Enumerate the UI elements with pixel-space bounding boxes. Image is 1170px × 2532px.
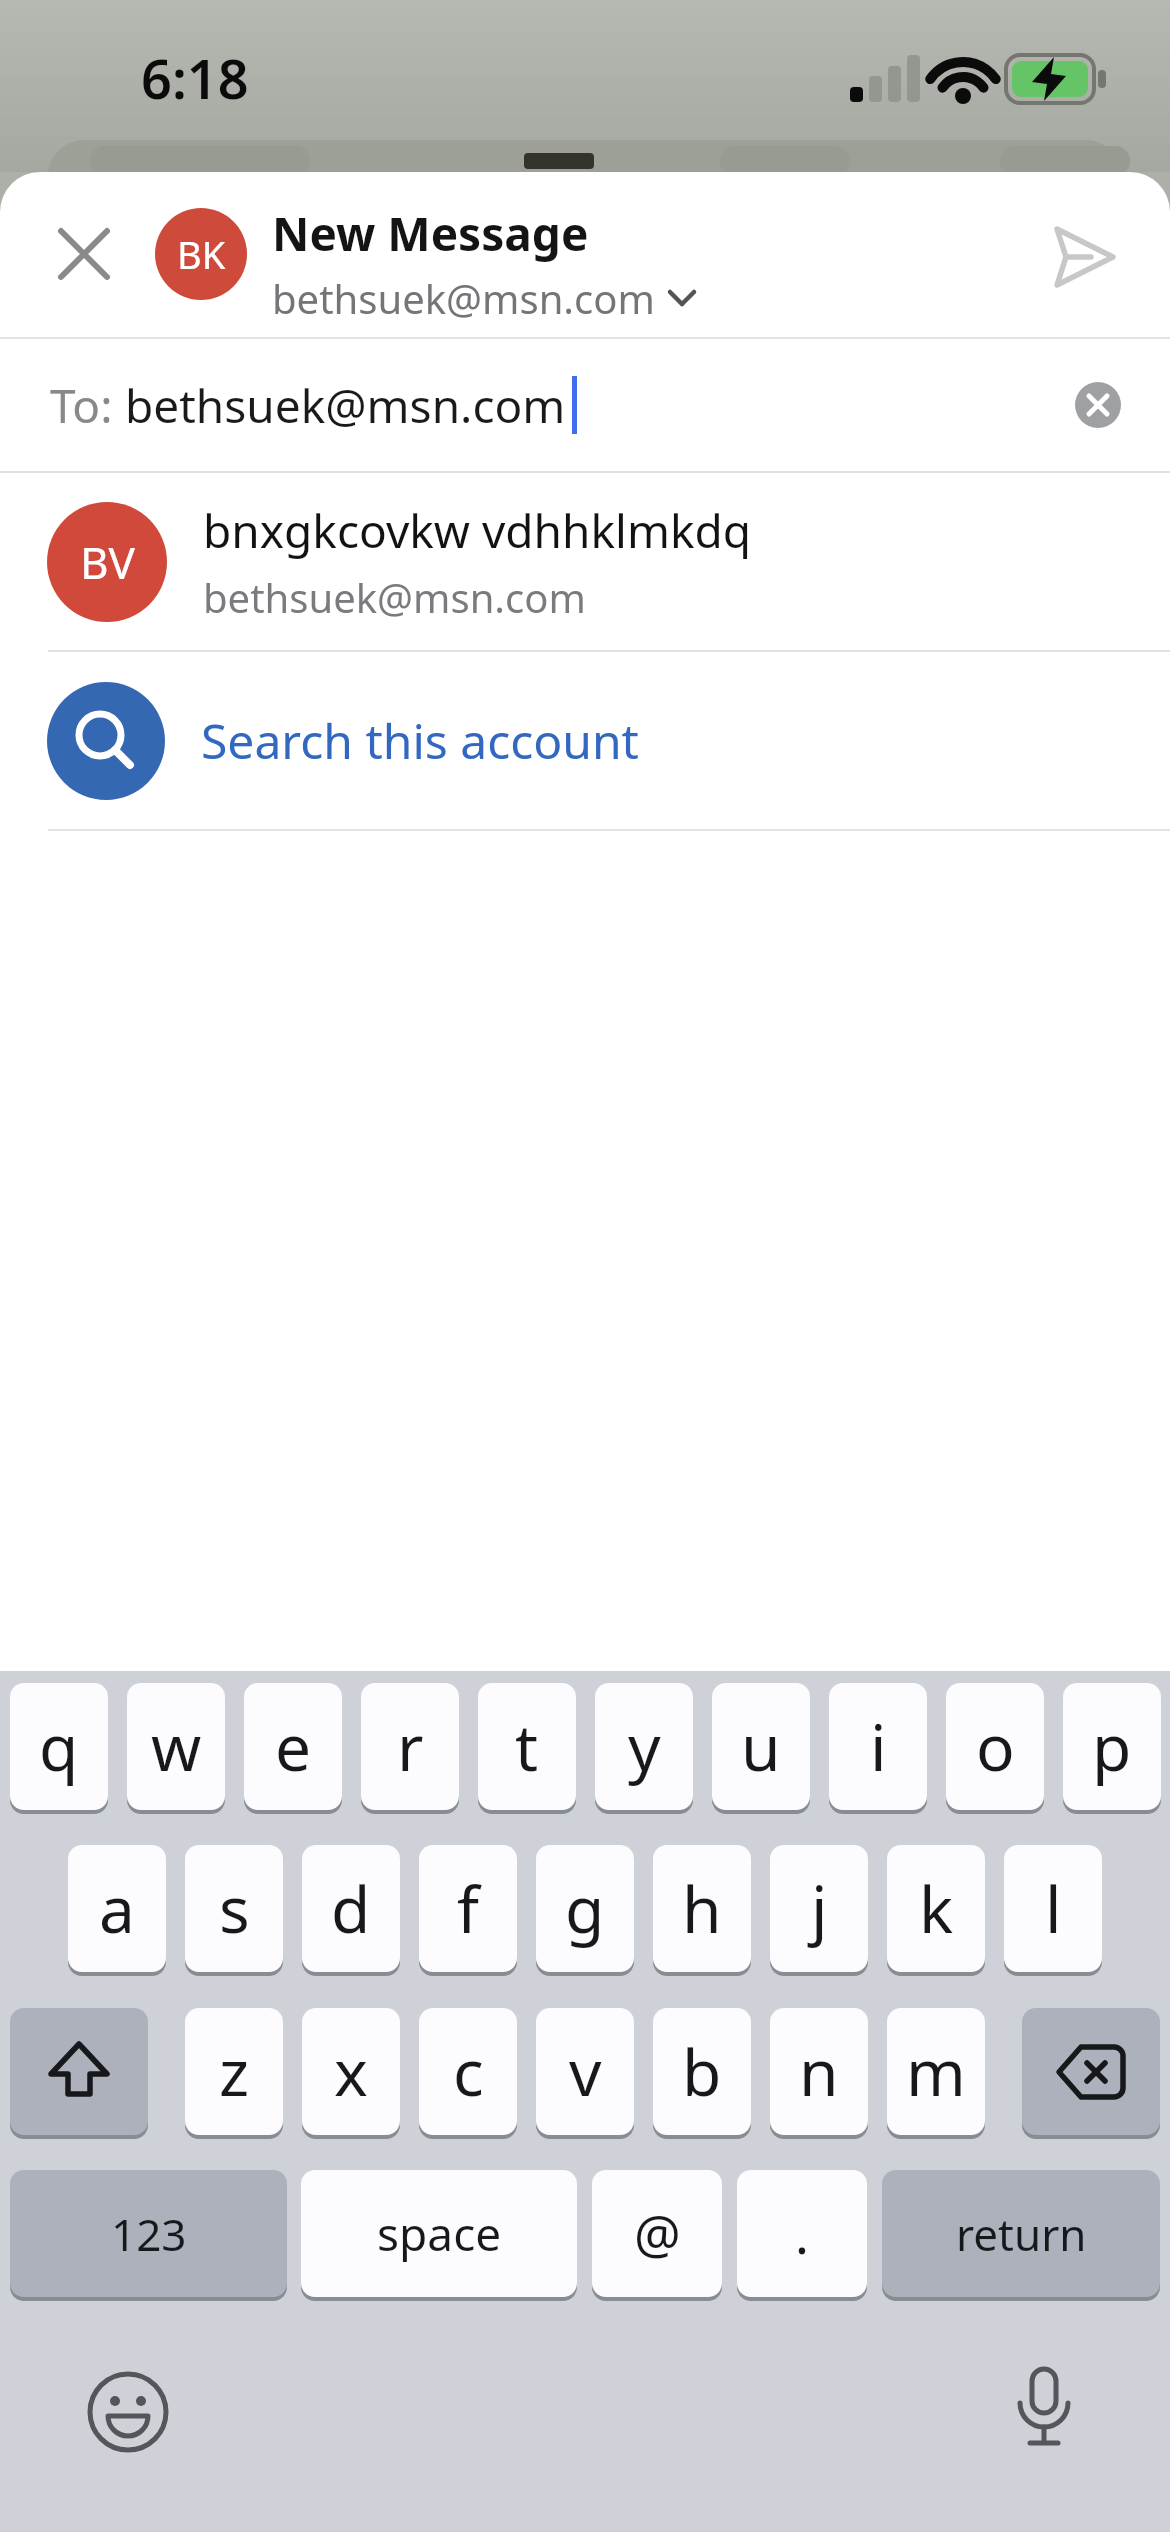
button[interactable]: BV: [0, 473, 1170, 650]
button[interactable]: [994, 2360, 1094, 2460]
button[interactable]: j: [770, 1845, 868, 1972]
staticText: To:: [50, 374, 125, 437]
button[interactable]: [10, 2008, 148, 2135]
staticText: c: [453, 2028, 484, 2115]
staticText: y: [628, 1703, 661, 1790]
staticText: New Message: [272, 202, 589, 265]
button[interactable]: [1022, 2008, 1160, 2135]
staticText: p: [1092, 1703, 1132, 1790]
staticText: n: [799, 2028, 839, 2115]
button[interactable]: r: [361, 1683, 459, 1810]
button[interactable]: t: [478, 1683, 576, 1810]
button[interactable]: q: [10, 1683, 108, 1810]
button[interactable]: i: [829, 1683, 927, 1810]
button[interactable]: k: [887, 1845, 985, 1972]
staticText: Search this account: [201, 708, 639, 773]
button[interactable]: s: [185, 1845, 283, 1972]
staticText: f: [457, 1865, 480, 1952]
staticText: r: [397, 1703, 424, 1790]
button[interactable]: g: [536, 1845, 634, 1972]
staticText: bethsuek@msn.com: [203, 570, 586, 624]
staticText: k: [919, 1865, 954, 1952]
button[interactable]: return: [882, 2170, 1160, 2297]
staticText: BV: [80, 532, 135, 592]
button[interactable]: d: [302, 1845, 400, 1972]
button[interactable]: .: [737, 2170, 867, 2297]
staticText: z: [219, 2028, 250, 2115]
button[interactable]: v: [536, 2008, 634, 2135]
button[interactable]: [1075, 382, 1121, 428]
staticText: m: [906, 2028, 966, 2115]
button[interactable]: x: [302, 2008, 400, 2135]
staticText: 6:18: [141, 41, 249, 115]
button[interactable]: To:: [0, 339, 1170, 471]
button[interactable]: [44, 214, 124, 294]
staticText: w: [151, 1703, 202, 1790]
button[interactable]: y: [595, 1683, 693, 1810]
button[interactable]: 123: [10, 2170, 287, 2297]
staticText: BK: [177, 228, 226, 280]
button[interactable]: h: [653, 1845, 751, 1972]
staticText: l: [1045, 1865, 1062, 1952]
staticText: d: [331, 1865, 371, 1952]
staticText: x: [334, 2028, 368, 2115]
staticText: @: [634, 2198, 681, 2269]
button[interactable]: p: [1063, 1683, 1161, 1810]
button[interactable]: [78, 2362, 178, 2462]
button[interactable]: Search this account: [0, 652, 1170, 829]
staticText: i: [870, 1703, 887, 1790]
staticText: b: [682, 2028, 722, 2115]
button[interactable]: w: [127, 1683, 225, 1810]
button[interactable]: m: [887, 2008, 985, 2135]
staticText: h: [682, 1865, 722, 1952]
staticText: g: [565, 1865, 605, 1952]
button[interactable]: a: [68, 1845, 166, 1972]
staticText: a: [99, 1865, 135, 1952]
button[interactable]: u: [712, 1683, 810, 1810]
button[interactable]: [1030, 212, 1140, 302]
button[interactable]: e: [244, 1683, 342, 1810]
staticText: 123: [111, 2204, 187, 2264]
button[interactable]: z: [185, 2008, 283, 2135]
button[interactable]: f: [419, 1845, 517, 1972]
button[interactable]: l: [1004, 1845, 1102, 1972]
button[interactable]: o: [946, 1683, 1044, 1810]
staticText: j: [811, 1865, 828, 1952]
staticText: o: [976, 1703, 1015, 1790]
staticText: e: [275, 1703, 312, 1790]
button[interactable]: New Message: [272, 202, 695, 325]
staticText: u: [741, 1703, 781, 1790]
staticText: bnxgkcovkw vdhhklmkdq: [203, 499, 752, 562]
staticText: return: [956, 2204, 1087, 2264]
button[interactable]: space: [301, 2170, 577, 2297]
staticText: s: [219, 1865, 250, 1952]
staticText: .: [795, 2198, 809, 2269]
button[interactable]: @: [592, 2170, 722, 2297]
staticText: space: [377, 2202, 502, 2265]
button[interactable]: c: [419, 2008, 517, 2135]
staticText: t: [515, 1703, 539, 1790]
staticText: v: [569, 2028, 602, 2115]
staticText: bethsuek@msn.com: [272, 271, 655, 325]
button[interactable]: n: [770, 2008, 868, 2135]
button[interactable]: b: [653, 2008, 751, 2135]
staticText: q: [39, 1703, 79, 1790]
staticText: bethsuek@msn.com: [125, 374, 566, 437]
